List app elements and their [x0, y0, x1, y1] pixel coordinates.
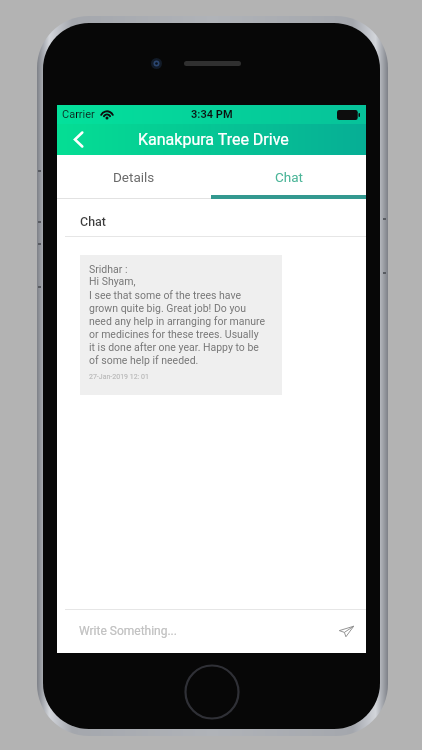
staticText: Sridhar : — [89, 263, 128, 275]
button[interactable]: Chat — [211, 155, 366, 199]
staticText: Write Something... — [79, 624, 177, 638]
staticText: Hi Shyam, I see that some of the trees h… — [89, 275, 266, 366]
staticText: Chat — [275, 169, 303, 185]
staticText: Carrier — [62, 108, 95, 121]
button[interactable]: Back — [57, 124, 99, 155]
button[interactable]: Send — [334, 619, 358, 643]
staticText: 27-Jan-2019 12: 01 — [89, 373, 149, 381]
staticText: Details — [113, 169, 155, 185]
staticText: Kanakpura Tree Drive — [138, 130, 289, 149]
staticText: 3:34 PM — [191, 108, 233, 121]
button[interactable]: Details — [57, 155, 211, 199]
staticText: Chat — [80, 214, 107, 229]
